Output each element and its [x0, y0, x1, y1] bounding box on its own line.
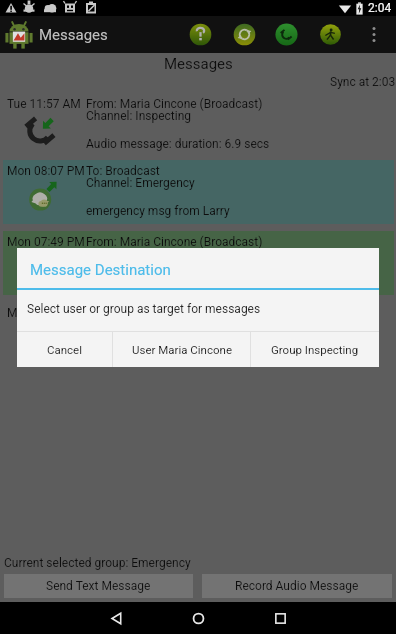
button[interactable]: Synchronise — [232, 16, 256, 53]
staticText: Channel: Inspecting — [86, 318, 192, 332]
staticText: 2:04 — [368, 1, 392, 15]
staticText: Channel: Inspecting — [86, 247, 192, 261]
staticText: User Maria Cincone — [132, 343, 232, 356]
staticText: Mon 07:36 PM — [7, 306, 85, 320]
button[interactable]: Mon 08:07 PM — [3, 160, 394, 224]
button[interactable]: Tue 11:57 AM — [3, 93, 394, 157]
button[interactable]: More options — [363, 16, 385, 53]
button[interactable]: Back — [86, 602, 146, 634]
staticText: From: Maria Cincone — [86, 306, 197, 320]
staticText: Cancel — [47, 343, 83, 356]
button[interactable]: Record Audio Message — [202, 574, 392, 598]
button[interactable]: User Maria Cincone — [113, 332, 250, 367]
staticText: Mon 08:07 PM — [7, 164, 85, 178]
button[interactable]: Send Text Message — [4, 574, 193, 598]
button[interactable]: Mon 07:49 PM — [3, 231, 394, 295]
button[interactable]: Mon 07:36 PM — [3, 302, 394, 366]
staticText: Sync at 2:03 — [330, 75, 396, 89]
staticText: message to Larry — [86, 346, 179, 360]
staticText: Audio message: duration: 6.9 secs — [86, 137, 270, 151]
button[interactable]: Help — [188, 16, 212, 53]
button[interactable]: Cancel — [17, 332, 112, 367]
staticText: To: Broadcast — [86, 164, 160, 178]
staticText: Channel: Emergency — [86, 176, 195, 190]
staticText: From: Maria Cincone (Broadcast) — [86, 235, 263, 249]
staticText: Record Audio Message — [235, 579, 359, 593]
button[interactable]: Recent apps — [250, 602, 310, 634]
staticText: Messages — [164, 55, 233, 73]
staticText: Send Text Message — [46, 579, 151, 593]
staticText: another message here — [86, 275, 206, 289]
staticText: Message Destination — [30, 261, 171, 279]
button[interactable]: Call — [274, 16, 298, 53]
staticText: Mon 07:49 PM — [7, 235, 85, 249]
staticText: Group Inspecting — [271, 343, 359, 356]
button[interactable]: Broadcast — [318, 16, 342, 53]
button[interactable]: Navigate up — [2, 18, 36, 52]
staticText: emergency msg from Larry — [86, 204, 230, 218]
staticText: Channel: Inspecting — [86, 109, 192, 123]
staticText: From: Maria Cincone (Broadcast) — [86, 97, 263, 111]
button[interactable]: Group Inspecting — [251, 332, 379, 367]
staticText: Tue 11:57 AM — [7, 97, 81, 111]
button[interactable]: Home — [168, 602, 228, 634]
staticText: Messages — [39, 26, 108, 44]
staticText: Select user or group as target for messa… — [27, 302, 261, 316]
staticText: Current selected group: Emergency — [4, 556, 191, 570]
